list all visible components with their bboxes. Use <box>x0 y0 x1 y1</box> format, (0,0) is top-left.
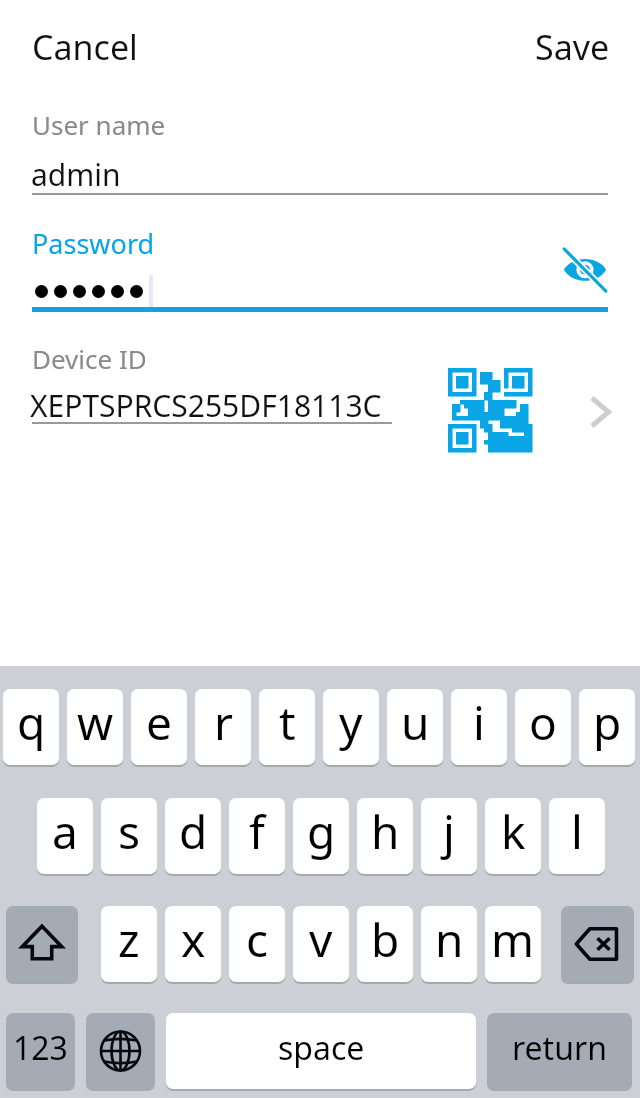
staticText: x <box>181 908 206 971</box>
button[interactable]: a <box>37 798 93 874</box>
staticText: p <box>593 691 622 754</box>
staticText: User name <box>32 107 166 142</box>
staticText: i <box>473 691 485 754</box>
staticText: Device ID <box>32 341 147 376</box>
button[interactable] <box>32 334 392 424</box>
button[interactable]: q <box>3 689 59 765</box>
button[interactable]: i <box>451 689 507 765</box>
button[interactable]: o <box>515 689 571 765</box>
staticText: 123 <box>13 1026 68 1070</box>
button[interactable]: d <box>165 798 221 874</box>
staticText: g <box>307 800 336 863</box>
button[interactable]: return <box>487 1013 632 1089</box>
button[interactable]: k <box>485 798 541 874</box>
button[interactable]: Cancel <box>16 16 154 78</box>
staticText: n <box>435 908 464 971</box>
staticText: w <box>77 691 114 754</box>
staticText: b <box>371 908 400 971</box>
button[interactable]: u <box>387 689 443 765</box>
staticText: y <box>339 691 363 754</box>
button[interactable]: y <box>323 689 379 765</box>
button[interactable]: j <box>421 798 477 874</box>
button[interactable]: h <box>357 798 413 874</box>
button[interactable]: Save <box>519 16 626 78</box>
button[interactable]: t <box>259 689 315 765</box>
staticText: q <box>17 691 46 754</box>
staticText: r <box>214 691 233 754</box>
button[interactable]: v <box>293 906 349 982</box>
button[interactable]: Open <box>573 382 633 442</box>
staticText: a <box>52 800 78 863</box>
button[interactable]: s <box>101 798 157 874</box>
staticText: XEPTSPRCS255DF18113C <box>30 385 382 426</box>
staticText: e <box>146 691 172 754</box>
button[interactable]: n <box>421 906 477 982</box>
button[interactable]: g <box>293 798 349 874</box>
staticText: Cancel <box>32 24 138 70</box>
staticText: c <box>246 908 269 971</box>
button[interactable] <box>32 100 608 196</box>
staticText: v <box>309 908 333 971</box>
button[interactable]: Hide password <box>554 240 616 302</box>
button[interactable] <box>32 218 542 313</box>
staticText: h <box>371 800 400 863</box>
button[interactable]: e <box>131 689 187 765</box>
button[interactable]: b <box>357 906 413 982</box>
staticText: o <box>529 691 557 754</box>
button[interactable]: z <box>101 906 157 982</box>
staticText: t <box>279 691 296 754</box>
button[interactable]: m <box>485 906 541 982</box>
button[interactable]: l <box>549 798 605 874</box>
staticText: k <box>501 800 526 863</box>
staticText: space <box>278 1026 365 1070</box>
staticText: Save <box>535 24 610 70</box>
staticText: f <box>249 800 265 863</box>
staticText: s <box>118 800 141 863</box>
staticText: m <box>491 908 535 971</box>
button[interactable]: Shift <box>6 906 78 982</box>
button[interactable]: f <box>229 798 285 874</box>
button[interactable]: Backspace <box>561 906 634 982</box>
staticText: j <box>443 800 455 863</box>
staticText: z <box>118 908 140 971</box>
button[interactable]: c <box>229 906 285 982</box>
button[interactable]: Scan QR code <box>436 356 544 464</box>
staticText: admin <box>31 154 121 195</box>
button[interactable]: Change language <box>86 1013 155 1089</box>
staticText: Password <box>32 225 155 262</box>
button[interactable]: space <box>166 1013 476 1089</box>
button[interactable]: 123 <box>6 1013 75 1089</box>
button[interactable]: x <box>165 906 221 982</box>
staticText: l <box>571 800 583 863</box>
staticText: d <box>179 800 208 863</box>
button[interactable]: r <box>195 689 251 765</box>
button[interactable]: p <box>579 689 635 765</box>
staticText: return <box>512 1026 607 1070</box>
staticText: u <box>401 691 430 754</box>
button[interactable]: w <box>67 689 123 765</box>
